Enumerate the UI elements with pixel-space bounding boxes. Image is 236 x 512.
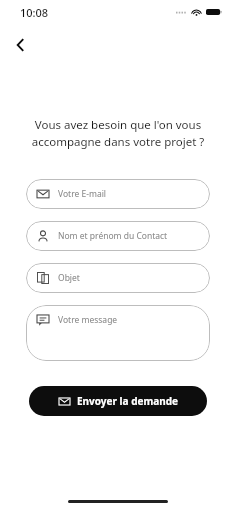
button[interactable]: Envoyer la demande: [29, 386, 207, 416]
staticText: Votre message: [58, 314, 118, 326]
button[interactable]: Nom et prénom du Contact: [26, 221, 210, 251]
staticText: Objet: [58, 272, 80, 284]
button[interactable]: Votre E-mail: [26, 179, 210, 209]
button[interactable]: Votre message: [26, 305, 210, 361]
staticText: Vous avez besoin que l'on vous accompagn…: [20, 117, 216, 150]
staticText: Votre E-mail: [58, 188, 107, 200]
button[interactable]: Back: [4, 28, 38, 62]
staticText: Nom et prénom du Contact: [58, 230, 168, 242]
staticText: 10:08: [20, 5, 49, 20]
staticText: Envoyer la demande: [77, 394, 178, 408]
button[interactable]: Objet: [26, 263, 210, 293]
